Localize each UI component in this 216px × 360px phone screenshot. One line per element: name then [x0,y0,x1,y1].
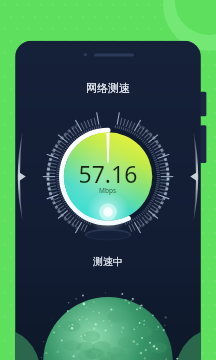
button[interactable]: Network speed test, 57.16 Mbps, testing [0,0,216,360]
